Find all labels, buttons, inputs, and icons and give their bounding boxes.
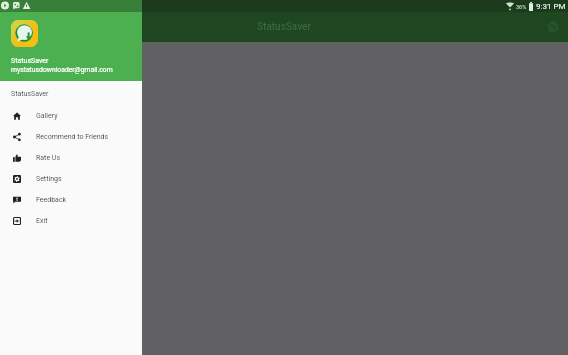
staticText: Feedback (36, 196, 67, 204)
staticText: Settings (36, 175, 62, 183)
button[interactable]: Feedback (0, 189, 142, 210)
button[interactable]: Recommend to Friends (0, 126, 142, 147)
staticText: Rate Us (36, 154, 61, 162)
button[interactable]: Rate Us (0, 147, 142, 168)
staticText: StatusSaver (257, 21, 311, 33)
staticText: 9:31 PM (536, 2, 566, 11)
staticText: mystatusdownloader@gmail.com (11, 66, 113, 74)
staticText: Gallery (36, 112, 58, 120)
button[interactable]: Exit (0, 210, 142, 231)
staticText: 36% (516, 4, 527, 10)
button[interactable]: WhatsApp (542, 16, 564, 38)
staticText: StatusSaver (11, 90, 49, 98)
button[interactable]: Gallery (0, 105, 142, 126)
button[interactable]: Settings (0, 168, 142, 189)
staticText: Recommend to Friends (36, 133, 109, 141)
staticText: StatusSaver (11, 57, 49, 65)
staticText: Exit (36, 217, 48, 225)
